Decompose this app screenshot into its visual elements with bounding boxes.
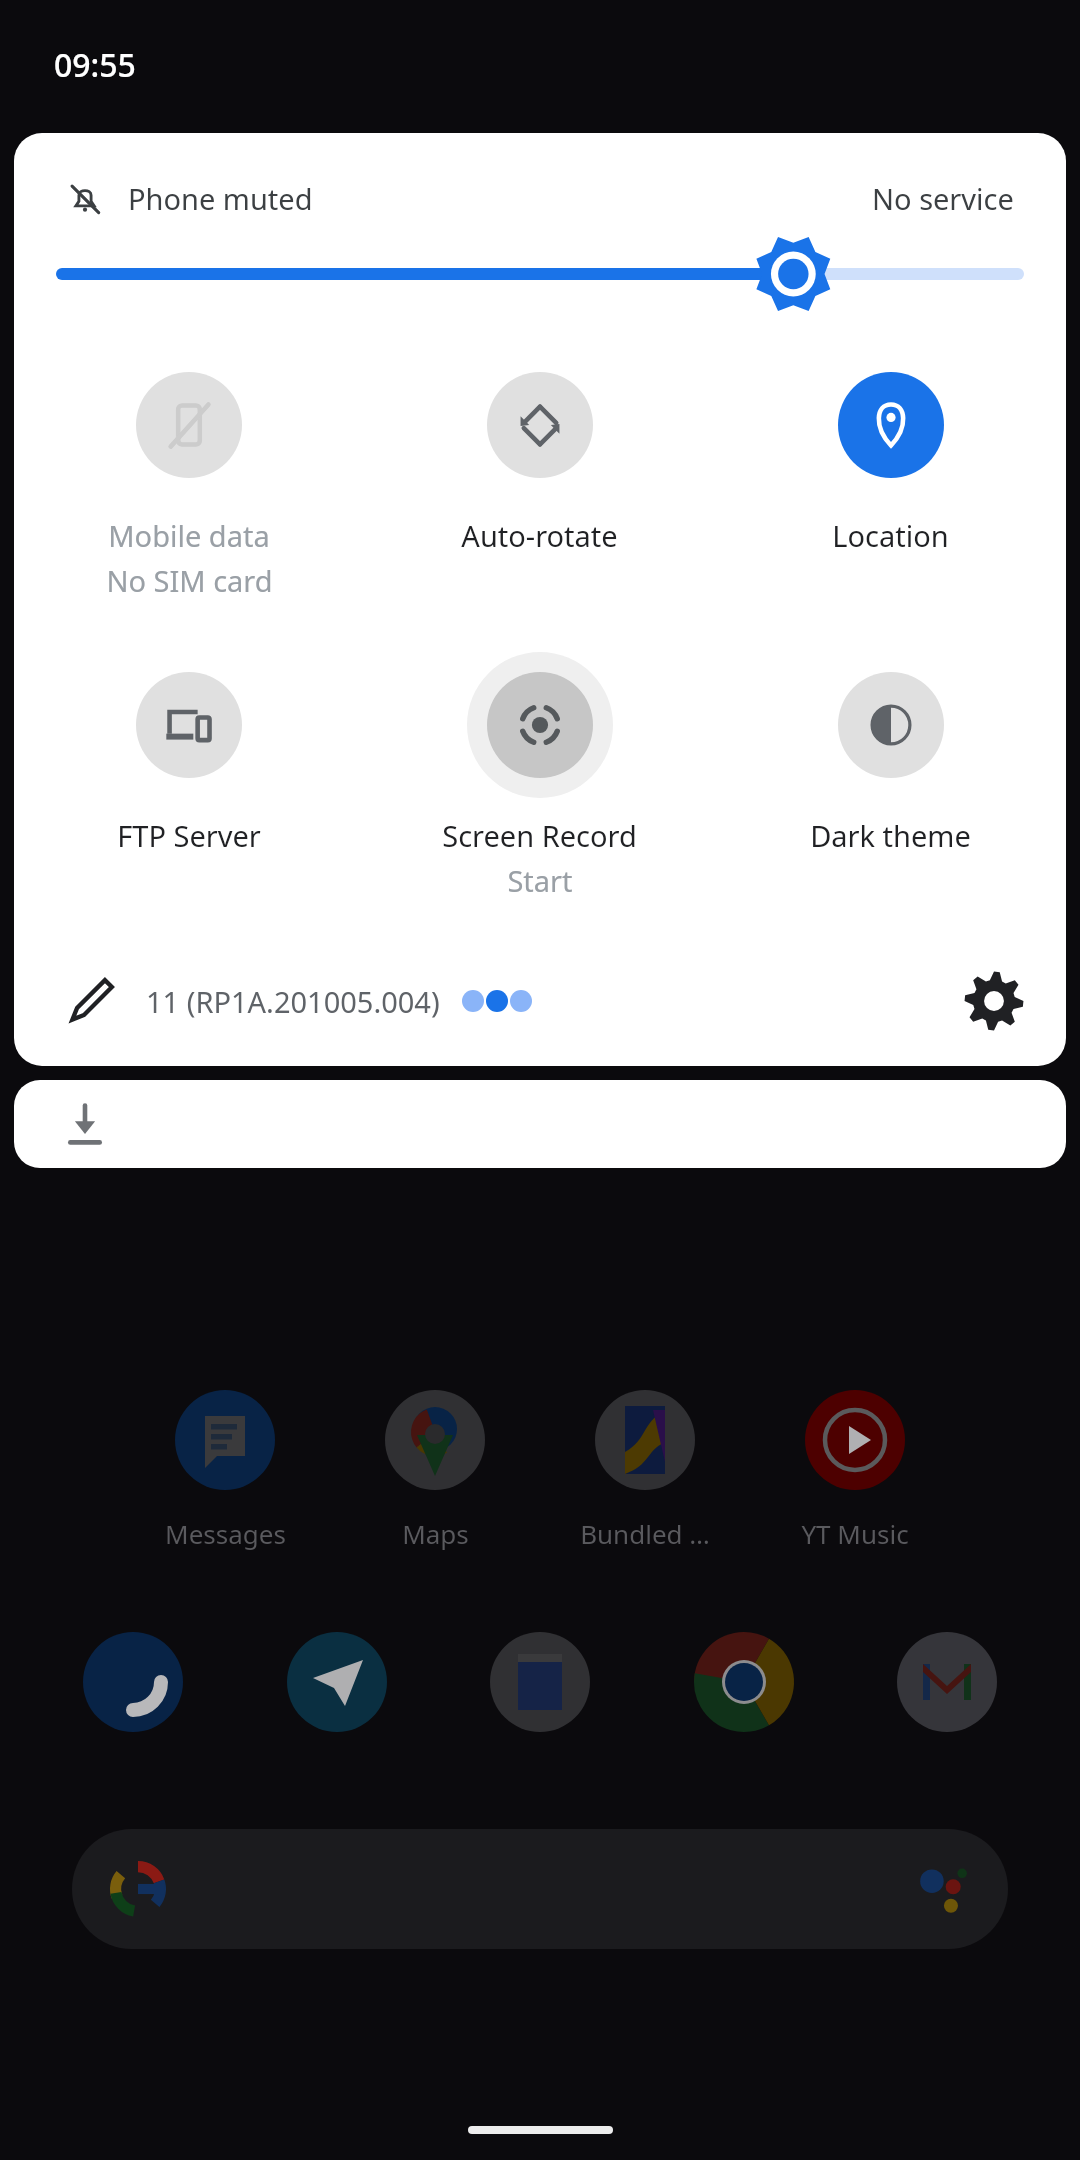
button[interactable]: Location xyxy=(715,352,1066,555)
button[interactable] xyxy=(266,1611,408,1753)
button[interactable] xyxy=(876,1611,1018,1753)
staticText: Screen Record xyxy=(442,816,637,855)
button[interactable]: Dark theme xyxy=(715,652,1066,855)
button[interactable] xyxy=(72,1829,1008,1949)
button[interactable]: FTP Server xyxy=(14,652,364,855)
button[interactable] xyxy=(469,1611,611,1753)
staticText: Start xyxy=(507,861,573,900)
button[interactable]: Maps xyxy=(360,1390,510,1551)
staticText: Location xyxy=(832,516,949,555)
staticText: Auto-rotate xyxy=(461,516,618,555)
button[interactable]: Edit xyxy=(62,972,120,1030)
staticText: Messages xyxy=(165,1516,286,1551)
button[interactable]: Expand notifications xyxy=(14,1080,1066,1168)
button[interactable]: Messages xyxy=(150,1390,300,1551)
staticText: FTP Server xyxy=(117,816,261,855)
staticText: 11 (RP1A.201005.004) xyxy=(146,982,440,1021)
button[interactable] xyxy=(62,1611,204,1753)
button[interactable] xyxy=(14,218,1066,330)
staticText: Maps xyxy=(402,1516,469,1551)
staticText: No SIM card xyxy=(106,561,273,600)
staticText: No service xyxy=(872,179,1014,218)
button[interactable]: YT Music xyxy=(780,1390,930,1551)
button[interactable]: Screen Record xyxy=(364,652,715,900)
staticText: 09:55 xyxy=(54,43,136,87)
staticText: Mobile data xyxy=(108,516,270,555)
staticText: YT Music xyxy=(801,1516,909,1551)
button[interactable] xyxy=(673,1611,815,1753)
button[interactable]: Phone muted xyxy=(66,179,313,218)
button[interactable]: Settings xyxy=(962,969,1026,1033)
staticText: Bundled … xyxy=(580,1516,710,1551)
button[interactable]: Mobile data xyxy=(14,352,364,600)
staticText: Phone muted xyxy=(128,179,313,218)
staticText: Dark theme xyxy=(810,816,971,855)
button[interactable]: Auto-rotate xyxy=(364,352,715,555)
button[interactable]: Bundled … xyxy=(570,1390,720,1551)
